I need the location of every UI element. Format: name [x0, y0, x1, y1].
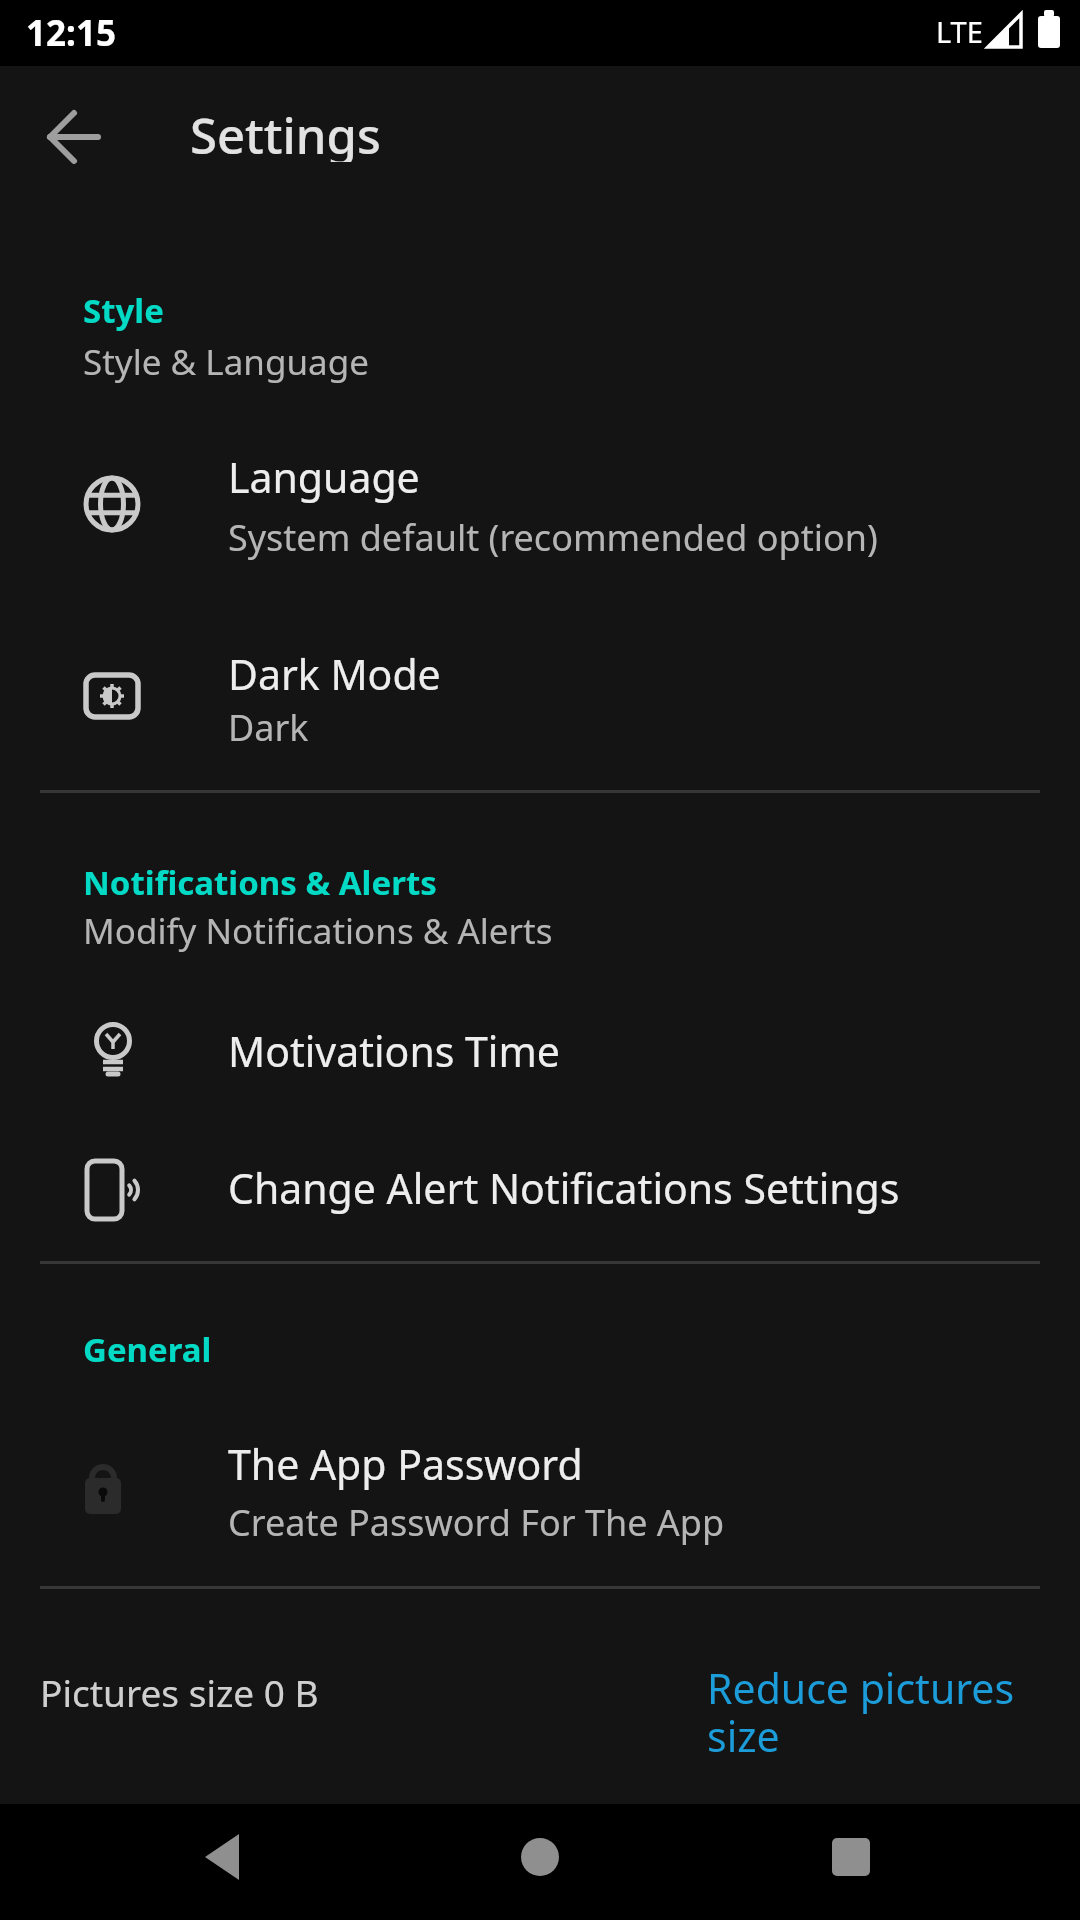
button[interactable]: Reduce pictures size: [690, 1648, 1050, 1788]
staticText: Dark Mode: [228, 646, 441, 702]
button[interactable]: The App Password: [0, 1415, 1080, 1567]
staticText: LTE: [936, 12, 983, 51]
staticText: General: [83, 1327, 212, 1372]
staticText: 12:15: [26, 9, 116, 57]
staticText: Style: [83, 288, 164, 333]
staticText: Motivations Time: [228, 1023, 560, 1079]
staticText: Style & Language: [83, 338, 369, 386]
staticText: Change Alert Notifications Settings: [228, 1160, 900, 1216]
button[interactable]: Motivations Time: [0, 985, 1080, 1115]
button[interactable]: Change Alert Notifications Settings: [0, 1125, 1080, 1255]
staticText: Create Password For The App: [228, 1498, 725, 1547]
button[interactable]: [28, 92, 118, 182]
staticText: Modify Notifications & Alerts: [83, 907, 553, 955]
button[interactable]: [505, 1822, 575, 1902]
staticText: Notifications & Alerts: [83, 860, 437, 905]
staticText: Language: [228, 449, 420, 505]
staticText: Pictures size 0 B: [40, 1667, 319, 1717]
staticText: Settings: [190, 102, 381, 162]
button[interactable]: Dark Mode: [0, 620, 1080, 772]
button[interactable]: [192, 1822, 262, 1902]
staticText: System default (recommended option): [228, 513, 878, 562]
staticText: Reduce pictures size: [707, 1660, 1047, 1764]
button[interactable]: [816, 1822, 886, 1902]
button[interactable]: Language: [0, 428, 1080, 580]
staticText: Dark: [228, 703, 309, 752]
staticText: The App Password: [228, 1436, 583, 1492]
